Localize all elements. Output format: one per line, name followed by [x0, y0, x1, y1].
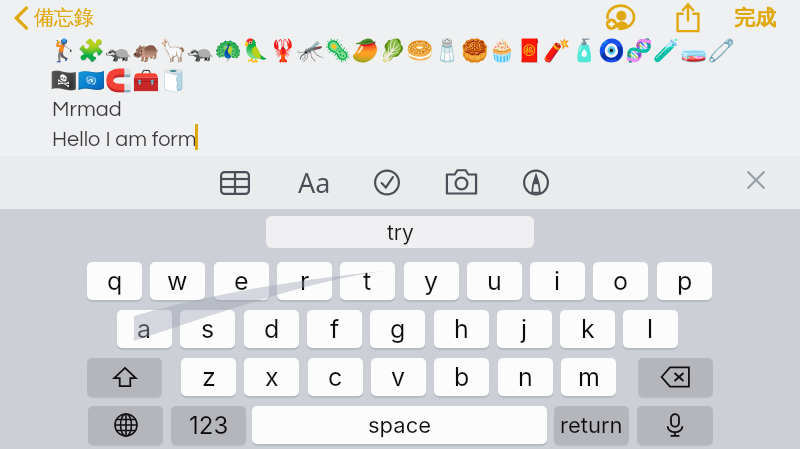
staticText: b [454, 362, 470, 392]
button[interactable]: l [623, 310, 678, 348]
staticText: 🏴‍☠️🇺🇳🧲🧰🧻 [50, 68, 187, 94]
button[interactable]: 123 [171, 406, 246, 444]
button[interactable]: t [340, 262, 395, 300]
staticText: return [560, 412, 623, 439]
button[interactable]: q [87, 262, 142, 300]
button[interactable]: c [308, 358, 363, 396]
staticText: u [487, 266, 502, 296]
staticText: e [234, 266, 249, 296]
button[interactable]: u [467, 262, 522, 300]
button[interactable]: g [370, 310, 425, 348]
staticText: g [390, 314, 406, 344]
button[interactable]: Checklist [374, 169, 400, 196]
staticText: q [107, 266, 123, 296]
button[interactable]: d [244, 310, 299, 348]
staticText: a [137, 314, 152, 344]
staticText: f [330, 314, 340, 344]
button[interactable]: r [277, 262, 332, 300]
staticText: space [368, 412, 432, 439]
button[interactable]: k [560, 310, 615, 348]
button[interactable]: p [657, 262, 712, 300]
button[interactable]: f [307, 310, 362, 348]
button[interactable]: e [214, 262, 269, 300]
staticText: 🏌️🧩🦡🦛🦙🦡🦚🦜🦞🦟🦠🥭🥬🥯🧂🥮🧁🧧🧨🧴🧿🧬🧪🧫🧷 [50, 38, 735, 64]
staticText: Aa [298, 164, 331, 198]
staticText: 123 [189, 411, 229, 440]
staticText: y [424, 266, 439, 296]
staticText: w [167, 266, 188, 296]
button[interactable]: a [117, 310, 172, 348]
staticText: r [300, 266, 310, 296]
staticText: Hello I am form [52, 128, 197, 150]
button[interactable]: space [252, 406, 547, 444]
button[interactable]: 完成 [732, 2, 778, 33]
staticText: v [391, 362, 406, 392]
button[interactable]: w [150, 262, 205, 300]
staticText: o [613, 266, 628, 296]
button[interactable]: h [434, 310, 489, 348]
button[interactable]: i [530, 262, 585, 300]
button[interactable]: Add people [602, 4, 636, 32]
staticText: Mrmad [52, 98, 122, 120]
staticText: 完成 [734, 5, 776, 31]
staticText: n [518, 362, 533, 392]
button[interactable]: s [180, 310, 235, 348]
button[interactable]: o [593, 262, 648, 300]
button[interactable]: Aa [294, 164, 334, 198]
staticText: x [265, 362, 279, 392]
staticText: h [454, 314, 469, 344]
button[interactable] [88, 406, 163, 444]
button[interactable]: Markup [523, 169, 549, 196]
button[interactable]: x [244, 358, 299, 396]
staticText: k [581, 314, 595, 344]
staticText: try [387, 220, 414, 245]
staticText: i [554, 266, 561, 296]
button[interactable]: n [498, 358, 553, 396]
staticText: l [647, 314, 654, 344]
staticText: c [328, 362, 343, 392]
staticText: z [202, 362, 216, 392]
button[interactable] [637, 406, 713, 444]
button[interactable]: 備忘錄 [13, 5, 94, 30]
button[interactable]: Table [220, 171, 250, 195]
button[interactable]: v [371, 358, 426, 396]
staticText: m [578, 362, 600, 392]
staticText: 備忘錄 [34, 5, 94, 30]
staticText: s [201, 314, 215, 344]
button[interactable]: Share [675, 2, 701, 32]
button[interactable]: Close [746, 170, 766, 190]
staticText: d [264, 314, 280, 344]
staticText: j [521, 314, 528, 344]
button[interactable] [638, 358, 713, 396]
button[interactable]: b [434, 358, 489, 396]
staticText: p [677, 266, 693, 296]
button[interactable]: z [181, 358, 236, 396]
button[interactable]: y [404, 262, 459, 300]
button[interactable] [87, 358, 162, 396]
button[interactable]: try [266, 216, 534, 248]
button[interactable]: return [554, 406, 629, 444]
button[interactable]: j [497, 310, 552, 348]
button[interactable]: m [561, 358, 616, 396]
staticText: t [363, 266, 372, 296]
button[interactable]: Camera [446, 169, 477, 194]
